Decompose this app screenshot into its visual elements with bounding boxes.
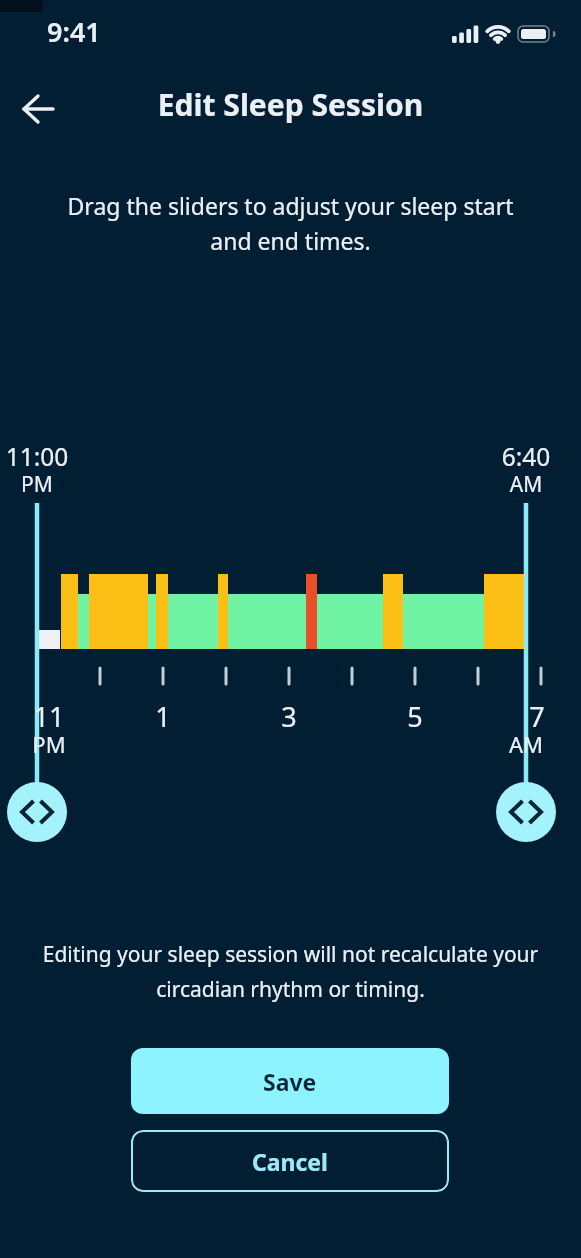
staticText: 3 (249, 698, 329, 735)
button[interactable] (10, 86, 66, 132)
button[interactable]: Cancel (131, 1130, 449, 1192)
staticText: Edit Sleep Session (0, 84, 581, 125)
staticText: 5 (375, 698, 455, 735)
button[interactable] (496, 782, 556, 842)
staticText: 9:41 (47, 13, 101, 50)
staticText: PM (0, 470, 77, 499)
staticText: AM (486, 470, 566, 499)
staticText: 11:00 (0, 440, 77, 473)
staticText: Drag the sliders to adjust your sleep st… (0, 190, 581, 257)
staticText: Cancel (252, 1146, 328, 1177)
staticText: AM (486, 729, 566, 759)
button[interactable]: Save (131, 1048, 449, 1114)
staticText: Save (263, 1066, 317, 1097)
staticText: 6:40 (486, 440, 566, 473)
staticText: 7 (497, 698, 577, 735)
button[interactable] (7, 782, 67, 842)
staticText: 1 (123, 698, 203, 735)
staticText: PM (9, 729, 89, 759)
staticText: 11 (9, 698, 89, 735)
staticText: Editing your sleep session will not reca… (0, 940, 581, 1003)
